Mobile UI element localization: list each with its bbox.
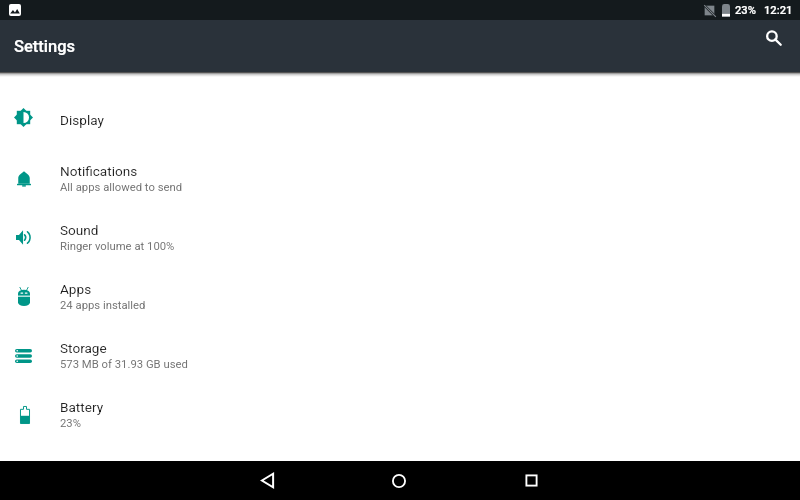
button[interactable]: Back	[238, 461, 298, 500]
button[interactable]: Search	[756, 20, 792, 56]
staticText: 573 MB of 31.93 GB used	[60, 358, 188, 371]
staticText: Display	[60, 112, 104, 128]
staticText: Ringer volume at 100%	[60, 240, 175, 253]
staticText: Settings	[14, 37, 76, 56]
button[interactable]: Notifications	[0, 149, 800, 208]
button[interactable]: Battery	[0, 385, 800, 444]
staticText: 23%	[60, 417, 81, 430]
staticText: Apps	[60, 281, 92, 297]
staticText: Notifications	[60, 163, 138, 179]
button[interactable]: Recent apps	[501, 461, 561, 500]
button[interactable]: Storage	[0, 326, 800, 385]
staticText: 12:21	[764, 4, 793, 17]
button[interactable]: Home	[369, 461, 429, 500]
staticText: 24 apps installed	[60, 299, 146, 312]
staticText: Battery	[60, 399, 104, 415]
button[interactable]: Apps	[0, 267, 800, 326]
button[interactable]: Sound	[0, 208, 800, 267]
staticText: 23%	[735, 4, 756, 17]
staticText: All apps allowed to send	[60, 181, 183, 194]
staticText: Sound	[60, 222, 99, 238]
staticText: Storage	[60, 340, 107, 356]
button[interactable]: Display	[0, 90, 800, 149]
